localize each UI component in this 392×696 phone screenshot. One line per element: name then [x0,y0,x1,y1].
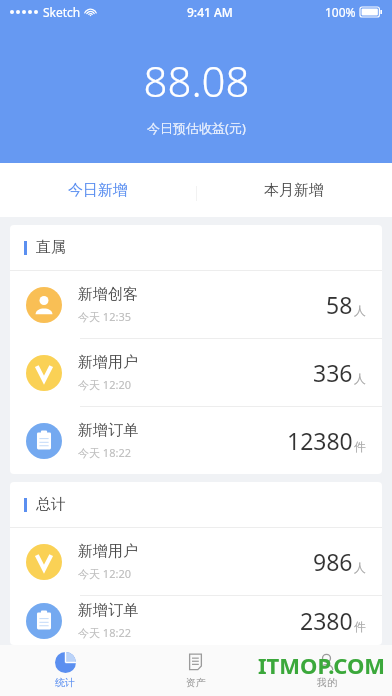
staticText: 件 [354,439,366,454]
button[interactable]: 统计 [0,645,130,696]
staticText: 2380 [300,605,353,636]
button[interactable]: 新增用户 [10,339,382,406]
staticText: 986 [313,546,353,577]
staticText: 新增创客 [78,285,138,304]
staticText: 新增用户 [78,353,138,372]
button[interactable]: 本月新增 [196,163,392,217]
staticText: 今天 18:22 [78,625,131,640]
staticText: 人 [354,371,366,386]
staticText: 今天 12:35 [78,309,131,324]
staticText: 今日预估收益(元) [147,119,246,137]
staticText: 总计 [36,495,66,514]
staticText: 人 [354,560,366,575]
staticText: 336 [313,357,353,388]
staticText: 直属 [36,238,66,257]
staticText: Sketch [43,4,81,20]
staticText: 100% [325,4,356,20]
button[interactable]: 今日新增 [0,163,196,217]
staticText: 统计 [55,676,75,689]
staticText: 今天 12:20 [78,566,131,581]
button[interactable]: 新增创客 [10,271,382,338]
staticText: ITMOP.COM [258,650,386,680]
staticText: 件 [354,619,366,634]
staticText: 88.08 [143,52,250,109]
staticText: 今天 18:22 [78,445,131,460]
staticText: 58 [326,289,353,320]
button[interactable]: 新增用户 [10,528,382,595]
staticText: 新增订单 [78,601,138,620]
staticText: 资产 [186,676,206,689]
button[interactable]: 新增订单 [10,596,382,645]
staticText: 12380 [287,425,353,456]
staticText: 今天 12:20 [78,377,131,392]
staticText: 新增用户 [78,542,138,561]
button[interactable]: 资产 [130,645,261,696]
button[interactable]: 我的 [261,645,392,696]
staticText: 新增订单 [78,421,138,440]
staticText: 我的 [317,676,337,689]
staticText: 9:41 AM [187,4,233,20]
staticText: 人 [354,303,366,318]
staticText: 今日新增 [68,181,128,200]
staticText: 本月新增 [264,181,324,200]
button[interactable]: 新增订单 [10,407,382,474]
